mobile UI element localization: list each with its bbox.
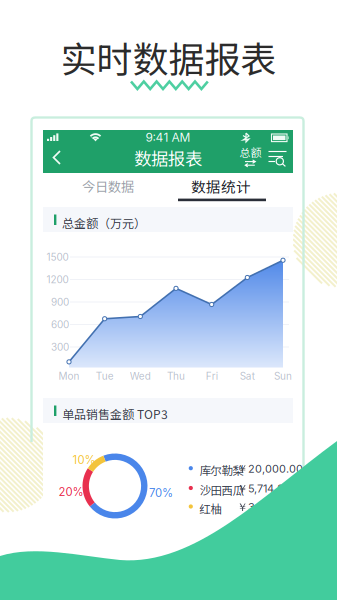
staticText: 数据统计 — [191, 175, 251, 197]
staticText: ￥3 — [237, 500, 255, 514]
button[interactable]: Search list — [0, 0, 337, 600]
staticText: Sun — [274, 370, 292, 382]
staticText: 实时数据报表 — [60, 31, 276, 83]
staticText: 总额 — [239, 144, 261, 160]
staticText: ￥20,000.00 — [237, 462, 303, 476]
staticText: 数据报表 — [134, 145, 202, 171]
staticText: 沙田西瓜 — [199, 482, 243, 498]
staticText: 1200 — [46, 273, 68, 286]
staticText: 红柚 — [199, 500, 221, 517]
staticText: 总金额（万元） — [62, 214, 146, 231]
staticText: 今日数据 — [82, 176, 134, 196]
staticText: 600 — [51, 318, 69, 331]
staticText: Sat — [240, 370, 255, 382]
staticText: Mon — [58, 370, 79, 382]
staticText: 9:41 AM — [145, 130, 190, 145]
staticText: 900 — [51, 296, 69, 308]
staticText: 1500 — [46, 251, 68, 263]
button[interactable]: 今日数据 — [0, 0, 337, 600]
staticText: 库尔勒梨 — [199, 462, 243, 478]
staticText: 20% — [58, 485, 83, 499]
staticText: 单品销售金额 TOP3 — [62, 405, 168, 422]
staticText: Thu — [167, 370, 185, 382]
staticText: Wed — [130, 370, 151, 382]
button[interactable]: Total amount — [0, 0, 337, 600]
staticText: Tue — [96, 370, 114, 382]
staticText: ￥5,714.2 — [237, 482, 284, 496]
staticText: 300 — [51, 341, 69, 353]
button[interactable]: Back — [0, 0, 337, 600]
staticText: 70% — [149, 486, 173, 500]
staticText: 10% — [72, 453, 95, 467]
staticText: Fri — [206, 370, 218, 382]
button[interactable]: 数据统计 — [0, 0, 337, 600]
